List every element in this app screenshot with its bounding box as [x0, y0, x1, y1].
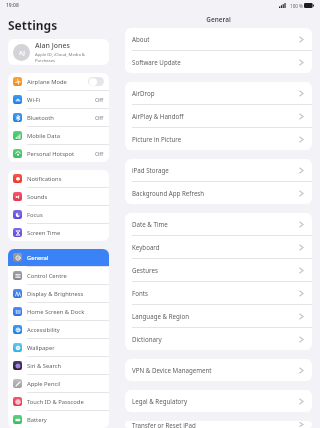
- staticText: Transfer or Reset iPad: [132, 421, 196, 428]
- button[interactable]: Wi-Fi: [8, 91, 109, 108]
- staticText: Settings: [8, 17, 58, 33]
- button[interactable]: Fonts: [125, 282, 312, 304]
- button[interactable]: Dictionary: [125, 328, 312, 350]
- button[interactable]: Background App Refresh: [125, 182, 312, 204]
- button[interactable]: Keyboard: [125, 236, 312, 258]
- staticText: Accessibility: [27, 326, 60, 334]
- staticText: General: [27, 254, 49, 262]
- staticText: Notifications: [27, 175, 62, 183]
- staticText: VPN & Device Management: [132, 366, 212, 374]
- button[interactable]: iPad Storage: [125, 159, 312, 181]
- staticText: Alan Jones: [35, 41, 70, 51]
- staticText: Mobile Data: [27, 132, 60, 140]
- button[interactable]: VPN & Device Management: [125, 359, 312, 381]
- staticText: Touch ID & Passcode: [27, 398, 84, 406]
- button[interactable]: Control Centre: [8, 267, 109, 284]
- button[interactable]: Home Screen & Dock: [8, 303, 109, 320]
- staticText: Apple Pencil: [27, 380, 61, 388]
- staticText: Bluetooth: [27, 114, 54, 122]
- button[interactable]: Legal & Regulatory: [125, 390, 312, 412]
- staticText: Keyboard: [132, 243, 160, 251]
- button[interactable]: Touch ID & Passcode: [8, 393, 109, 410]
- staticText: Battery: [27, 416, 47, 424]
- button[interactable]: About: [125, 28, 312, 50]
- button[interactable]: Sounds: [8, 188, 109, 205]
- button[interactable]: Mobile Data: [8, 127, 109, 144]
- staticText: Off: [95, 150, 104, 158]
- button[interactable]: Notifications: [8, 170, 109, 187]
- staticText: 19:08: [6, 2, 19, 9]
- staticText: 100 %: [290, 3, 303, 9]
- staticText: Wi-Fi: [27, 96, 41, 104]
- staticText: Airplane Mode: [27, 78, 67, 86]
- button[interactable]: Gestures: [125, 259, 312, 281]
- button[interactable]: AirPlay & Handoff: [125, 105, 312, 127]
- staticText: Off: [95, 96, 104, 104]
- button[interactable]: Screen Time: [8, 224, 109, 241]
- button[interactable]: General: [8, 249, 109, 266]
- button[interactable]: Accessibility: [8, 321, 109, 338]
- button[interactable]: Airplane Mode: [8, 73, 109, 90]
- button[interactable]: AJ: [8, 39, 109, 65]
- button[interactable]: Personal Hotspot: [8, 145, 109, 162]
- staticText: Date & Time: [132, 220, 168, 228]
- button[interactable]: Bluetooth: [8, 109, 109, 126]
- staticText: Display & Brightness: [27, 290, 84, 298]
- button[interactable]: Display & Brightness: [8, 285, 109, 302]
- staticText: Wallpaper: [27, 344, 55, 352]
- button[interactable]: Focus: [8, 206, 109, 223]
- button[interactable]: Picture in Picture: [125, 128, 312, 150]
- staticText: Dictionary: [132, 335, 162, 343]
- staticText: AirPlay & Handoff: [132, 112, 184, 120]
- staticText: Fonts: [132, 289, 148, 297]
- button[interactable]: Apple Pencil: [8, 375, 109, 392]
- button[interactable]: Battery: [8, 411, 109, 428]
- staticText: Gestures: [132, 266, 158, 274]
- button[interactable]: Software Update: [125, 51, 312, 73]
- staticText: Language & Region: [132, 312, 189, 320]
- staticText: Picture in Picture: [132, 135, 182, 143]
- button[interactable]: Siri & Search: [8, 357, 109, 374]
- staticText: Off: [95, 114, 104, 122]
- staticText: Legal & Regulatory: [132, 397, 188, 405]
- staticText: About: [132, 35, 150, 43]
- staticText: Screen Time: [27, 229, 61, 237]
- staticText: AirDrop: [132, 89, 155, 97]
- staticText: Sounds: [27, 193, 48, 201]
- staticText: Background App Refresh: [132, 189, 205, 197]
- button[interactable]: Language & Region: [125, 305, 312, 327]
- button[interactable]: Wallpaper: [8, 339, 109, 356]
- staticText: Siri & Search: [27, 362, 62, 370]
- staticText: AJ: [19, 49, 25, 57]
- staticText: iPad Storage: [132, 166, 169, 174]
- staticText: Home Screen & Dock: [27, 308, 85, 316]
- staticText: General: [206, 15, 231, 24]
- staticText: Focus: [27, 211, 43, 219]
- button[interactable]: AirDrop: [125, 82, 312, 104]
- button[interactable]: Date & Time: [125, 213, 312, 235]
- button[interactable]: Transfer or Reset iPad: [125, 421, 312, 428]
- staticText: Apple ID, iCloud, Media & Purchases: [35, 52, 104, 64]
- staticText: Personal Hotspot: [27, 150, 75, 158]
- staticText: Software Update: [132, 58, 181, 66]
- staticText: Control Centre: [27, 272, 67, 280]
